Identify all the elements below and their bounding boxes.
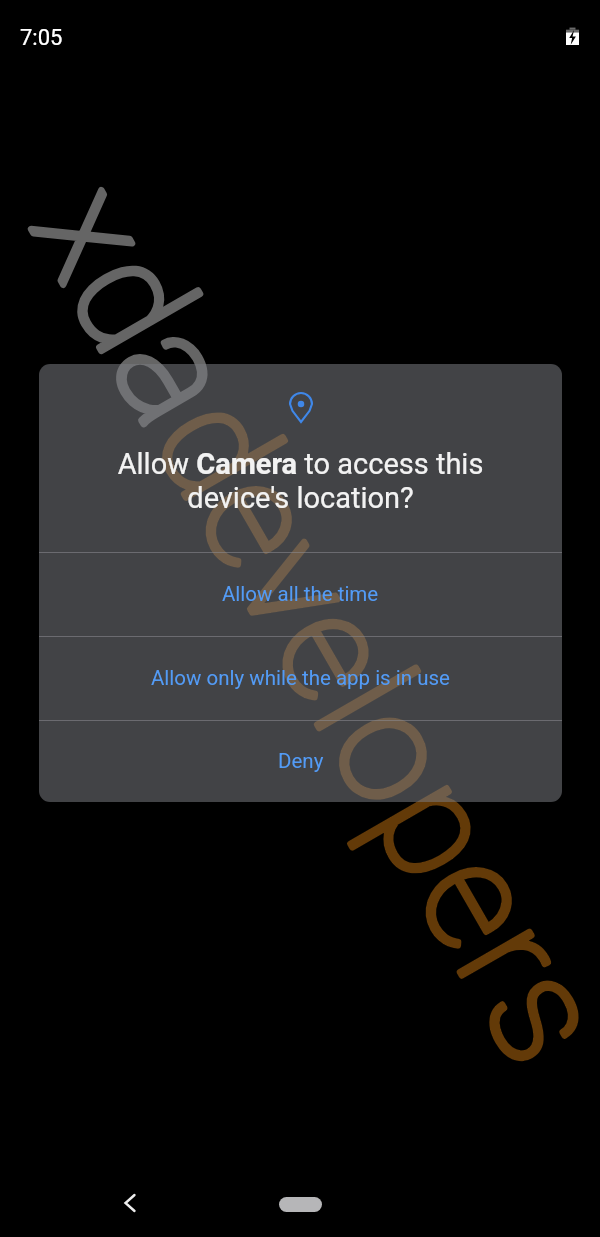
staticText: Deny (278, 749, 324, 773)
button[interactable]: Allow all the time (39, 552, 562, 636)
staticText: Allow all the time (222, 582, 379, 606)
button[interactable]: Deny (39, 720, 562, 802)
staticText: 7:05 (20, 25, 63, 51)
button[interactable]: Home (279, 1197, 322, 1212)
button[interactable]: Allow only while the app is in use (39, 636, 562, 720)
staticText: Allow only while the app is in use (151, 666, 450, 690)
button[interactable]: Back (108, 1181, 152, 1225)
staticText: Allow Camera to access this device's loc… (39, 447, 562, 515)
